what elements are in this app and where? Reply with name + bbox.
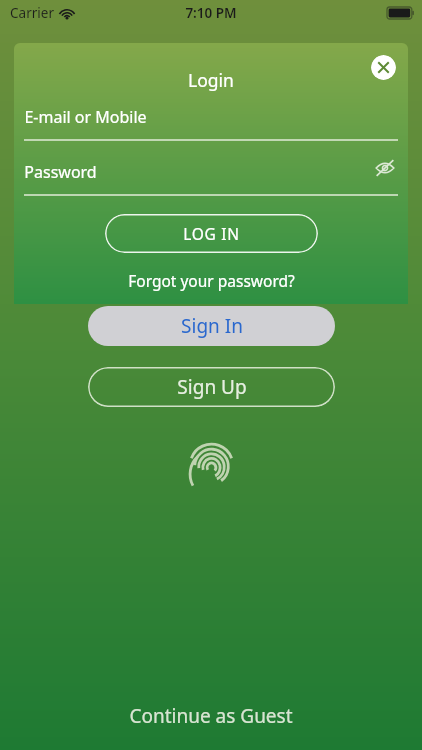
staticText: Continue as Guest <box>129 703 293 729</box>
button[interactable]: Sign Up <box>88 367 335 407</box>
other: Show password <box>374 159 396 177</box>
button[interactable]: Fingerprint login <box>186 439 237 490</box>
staticText: Sign In <box>181 313 243 339</box>
button[interactable]: Close <box>371 55 396 80</box>
staticText: 7:10 PM <box>185 4 237 22</box>
button[interactable]: Continue as Guest <box>0 694 422 750</box>
button[interactable]: E-mail or Mobile <box>14 101 408 143</box>
staticText: LOG IN <box>183 223 240 244</box>
staticText: Carrier <box>10 4 54 22</box>
staticText: Sign Up <box>177 374 247 400</box>
button[interactable]: Forgot your password? <box>122 268 301 293</box>
button[interactable]: LOG IN <box>105 214 318 253</box>
button[interactable]: Password <box>14 156 408 198</box>
staticText: E-mail or Mobile <box>24 106 147 128</box>
staticText: Login <box>188 68 234 92</box>
staticText: Password <box>24 161 97 183</box>
staticText: Forgot your password? <box>128 270 295 291</box>
button[interactable]: Sign In <box>88 306 335 346</box>
